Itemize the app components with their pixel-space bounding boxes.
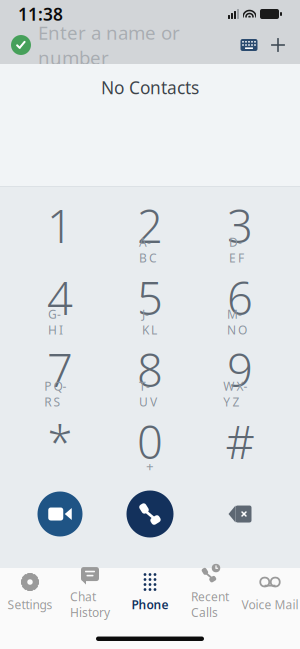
button[interactable]: Call xyxy=(105,489,195,539)
button[interactable]: 1 xyxy=(15,201,105,261)
staticText: 6 xyxy=(227,267,253,328)
button[interactable]: Delete xyxy=(195,489,285,539)
button[interactable]: Voice Mail xyxy=(240,570,300,614)
button[interactable]: Video call xyxy=(15,489,105,539)
button[interactable]: Add contact xyxy=(264,30,292,60)
button[interactable]: Settings xyxy=(0,570,60,614)
staticText: Enter a name or number xyxy=(38,20,180,70)
staticText: JKL xyxy=(142,306,158,338)
staticText: 3 xyxy=(227,195,253,256)
staticText: 7 xyxy=(47,339,73,400)
staticText: WXYZ xyxy=(223,378,257,410)
button[interactable]: Phone xyxy=(120,570,180,614)
button[interactable]: Recent Calls xyxy=(180,570,240,614)
staticText: 11:38 xyxy=(18,2,63,25)
staticText: 9 xyxy=(227,339,253,400)
button[interactable]: 6 xyxy=(195,273,285,333)
staticText: Recent Calls xyxy=(191,589,229,620)
button[interactable]: Status connected xyxy=(4,28,38,62)
button[interactable]: # xyxy=(195,417,285,477)
staticText: MNO xyxy=(227,306,253,338)
staticText: + xyxy=(146,457,154,475)
button[interactable]: Chat History xyxy=(60,570,120,614)
staticText: No Contacts xyxy=(101,76,199,99)
staticText: DEF xyxy=(229,234,251,266)
button[interactable]: 9 xyxy=(195,345,285,405)
staticText: TUV xyxy=(139,378,161,410)
button[interactable]: 2 xyxy=(105,201,195,261)
button[interactable]: 7 xyxy=(15,345,105,405)
staticText: GHI xyxy=(48,306,72,338)
staticText: Phone xyxy=(131,596,168,612)
button[interactable]: 5 xyxy=(105,273,195,333)
button[interactable]: 3 xyxy=(195,201,285,261)
staticText: * xyxy=(47,411,72,472)
button[interactable]: 0 xyxy=(105,417,195,477)
staticText: ABC xyxy=(139,234,161,266)
staticText: 1 xyxy=(47,195,73,256)
staticText: 5 xyxy=(137,267,163,328)
staticText: # xyxy=(225,411,254,472)
button[interactable]: Keyboard xyxy=(234,30,264,60)
staticText: 2 xyxy=(137,195,163,256)
button[interactable]: 8 xyxy=(105,345,195,405)
staticText: 0 xyxy=(137,411,163,472)
staticText: Voice Mail xyxy=(241,596,298,612)
button[interactable]: * xyxy=(15,417,105,477)
staticText: 4 xyxy=(47,267,73,328)
staticText: Chat History xyxy=(70,589,110,620)
button[interactable]: 4 xyxy=(15,273,105,333)
staticText: PQRS xyxy=(44,378,76,410)
staticText: 8 xyxy=(137,339,163,400)
staticText: Settings xyxy=(7,596,52,612)
